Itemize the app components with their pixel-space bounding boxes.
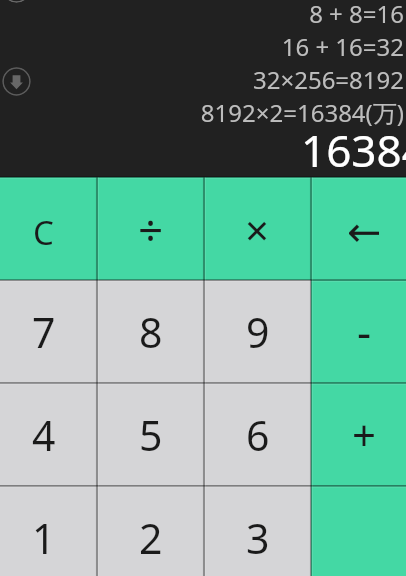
button[interactable]: 7	[0, 280, 97, 383]
staticText: 9	[246, 304, 270, 360]
staticText: 16384	[301, 120, 406, 180]
staticText: 32×256=8192	[252, 63, 404, 96]
staticText: ←	[347, 208, 382, 256]
staticText: 8 + 8=16	[309, 0, 404, 30]
button[interactable]: 2	[97, 486, 204, 576]
staticText: 7	[32, 304, 56, 360]
staticText: 8	[139, 304, 163, 360]
button[interactable]: ×	[204, 177, 311, 280]
button[interactable]: Backspace	[311, 177, 406, 280]
button[interactable]: Scroll history down	[2, 67, 31, 96]
staticText: 6	[246, 407, 270, 463]
button[interactable]: C	[0, 177, 97, 280]
button[interactable]: 6	[204, 383, 311, 486]
button[interactable]: 3	[204, 486, 311, 576]
staticText: 8192×2=16384(万)	[200, 96, 404, 129]
staticText: +	[352, 406, 377, 463]
staticText: C	[33, 210, 54, 255]
button[interactable]: -	[311, 280, 406, 383]
button[interactable]: ÷	[97, 177, 204, 280]
staticText: ÷	[138, 199, 164, 259]
staticText: 2	[139, 510, 163, 566]
staticText: 3	[246, 510, 270, 566]
button[interactable]: Equals	[311, 486, 406, 576]
button[interactable]: 4	[0, 383, 97, 486]
button[interactable]: 1	[0, 486, 97, 576]
button[interactable]: 8	[97, 280, 204, 383]
button[interactable]: 5	[97, 383, 204, 486]
button[interactable]: +	[311, 383, 406, 486]
staticText: 1	[32, 510, 56, 566]
staticText: 4	[32, 407, 56, 463]
button[interactable]: 9	[204, 280, 311, 383]
staticText: ×	[245, 201, 270, 258]
button[interactable]: Scroll history up	[2, 0, 31, 3]
staticText: 5	[139, 407, 163, 463]
staticText: -	[357, 301, 372, 361]
staticText: 16 + 16=32	[281, 30, 404, 63]
